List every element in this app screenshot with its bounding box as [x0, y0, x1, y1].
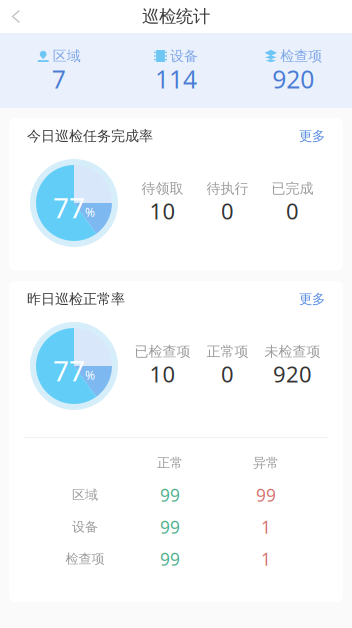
- staticText: %: [85, 367, 95, 383]
- staticText: 正常: [157, 455, 183, 471]
- staticText: 正常项: [206, 343, 248, 360]
- staticText: 10: [149, 196, 175, 226]
- staticText: 检查项: [65, 551, 104, 567]
- staticText: 10: [149, 359, 175, 389]
- staticText: 待领取: [141, 180, 183, 197]
- staticText: 920: [273, 359, 312, 389]
- staticText: 99: [160, 515, 180, 539]
- staticText: 77: [53, 351, 85, 389]
- button[interactable]: Back: [0, 0, 32, 33]
- staticText: 1: [261, 547, 271, 571]
- staticText: 异常: [253, 455, 279, 471]
- staticText: 巡检统计: [142, 6, 210, 27]
- staticText: 未检查项: [264, 343, 320, 360]
- staticText: 昨日巡检正常率: [27, 290, 125, 308]
- staticText: 设备: [72, 519, 98, 535]
- staticText: 99: [256, 483, 276, 507]
- staticText: 已完成: [271, 180, 313, 197]
- staticText: 99: [160, 483, 180, 507]
- staticText: 0: [286, 196, 299, 226]
- staticText: 0: [221, 359, 234, 389]
- staticText: 待执行: [206, 180, 248, 197]
- staticText: 设备: [170, 47, 198, 65]
- button[interactable]: 更多: [299, 128, 325, 144]
- staticText: 920: [272, 62, 314, 96]
- staticText: 更多: [299, 128, 325, 144]
- staticText: 114: [155, 62, 197, 96]
- staticText: 区域: [53, 47, 81, 65]
- staticText: 更多: [299, 291, 325, 307]
- staticText: 0: [221, 196, 234, 226]
- staticText: 1: [261, 515, 271, 539]
- staticText: 今日巡检任务完成率: [27, 127, 153, 145]
- button[interactable]: 更多: [299, 291, 325, 307]
- staticText: 99: [160, 547, 180, 571]
- staticText: 7: [52, 62, 66, 96]
- staticText: %: [85, 204, 95, 220]
- staticText: 检查项: [280, 47, 322, 65]
- staticText: 区域: [72, 487, 98, 503]
- staticText: 已检查项: [134, 343, 190, 360]
- staticText: 77: [53, 188, 85, 226]
